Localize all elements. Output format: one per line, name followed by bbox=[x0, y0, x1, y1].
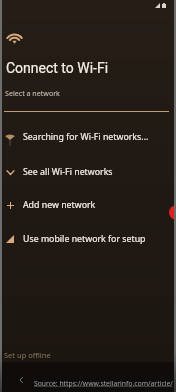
staticText: Use mobile network for setup bbox=[23, 233, 146, 245]
staticText: Set up offline bbox=[4, 350, 51, 360]
staticText: Select a network bbox=[5, 88, 60, 98]
staticText: Searching for Wi-Fi networks... bbox=[23, 131, 149, 143]
button[interactable]: Add new network bbox=[0, 188, 176, 222]
staticText: Add new network bbox=[23, 199, 96, 211]
button[interactable]: See all Wi-Fi networks bbox=[0, 155, 176, 189]
button[interactable]: Source: https://www.stellarinfo.com/arti… bbox=[34, 379, 173, 388]
button[interactable]: Searching for Wi-Fi networks... bbox=[0, 120, 176, 154]
button[interactable]: Previous page bbox=[13, 375, 29, 385]
staticText: See all Wi-Fi networks bbox=[23, 166, 113, 178]
button[interactable]: Set up offline bbox=[4, 350, 51, 360]
staticText: Connect to Wi-Fi bbox=[6, 60, 109, 76]
button[interactable]: Use mobile network for setup bbox=[0, 222, 176, 256]
